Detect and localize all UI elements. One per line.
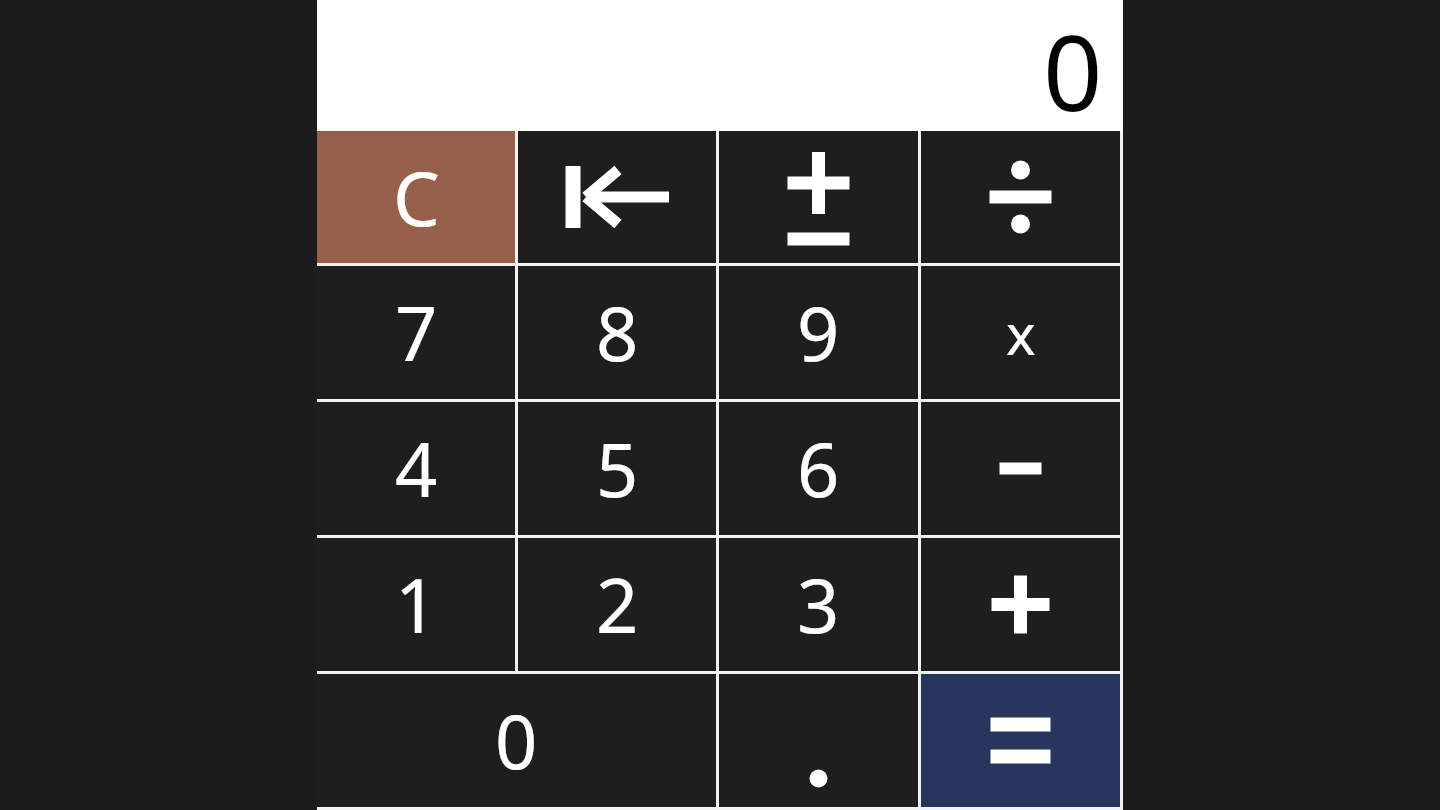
button[interactable]: 3 [719,538,918,671]
staticText: 1 [395,554,438,655]
staticText: 5 [596,418,639,519]
button[interactable]: Plus [921,538,1120,671]
button[interactable]: 8 [518,266,716,399]
button[interactable]: 0 [317,674,716,807]
staticText: C [393,147,440,248]
button[interactable]: 7 [317,266,515,399]
button[interactable]: 6 [719,402,918,535]
staticText: 3 [797,554,840,655]
staticText: 7 [395,282,438,383]
button[interactable]: 5 [518,402,716,535]
button[interactable]: Equals [921,674,1120,807]
staticText: 6 [797,418,840,519]
button[interactable]: Backspace [518,131,716,263]
button[interactable]: 4 [317,402,515,535]
staticText: 4 [395,418,438,519]
button[interactable]: 0 [317,0,1123,131]
staticText: 9 [797,282,840,383]
button[interactable]: x [921,266,1120,399]
button[interactable]: Minus [921,402,1120,535]
staticText: 0 [1043,0,1103,127]
staticText: x [1006,295,1036,371]
button[interactable]: 2 [518,538,716,671]
button[interactable]: Plus minus [719,131,918,263]
staticText: 2 [596,554,639,655]
button[interactable]: Decimal point [719,674,918,807]
button[interactable]: Divide [921,131,1120,263]
staticText: 8 [596,282,639,383]
button[interactable]: C [317,131,515,263]
staticText: 0 [495,690,538,791]
button[interactable]: 1 [317,538,515,671]
button[interactable]: 9 [719,266,918,399]
